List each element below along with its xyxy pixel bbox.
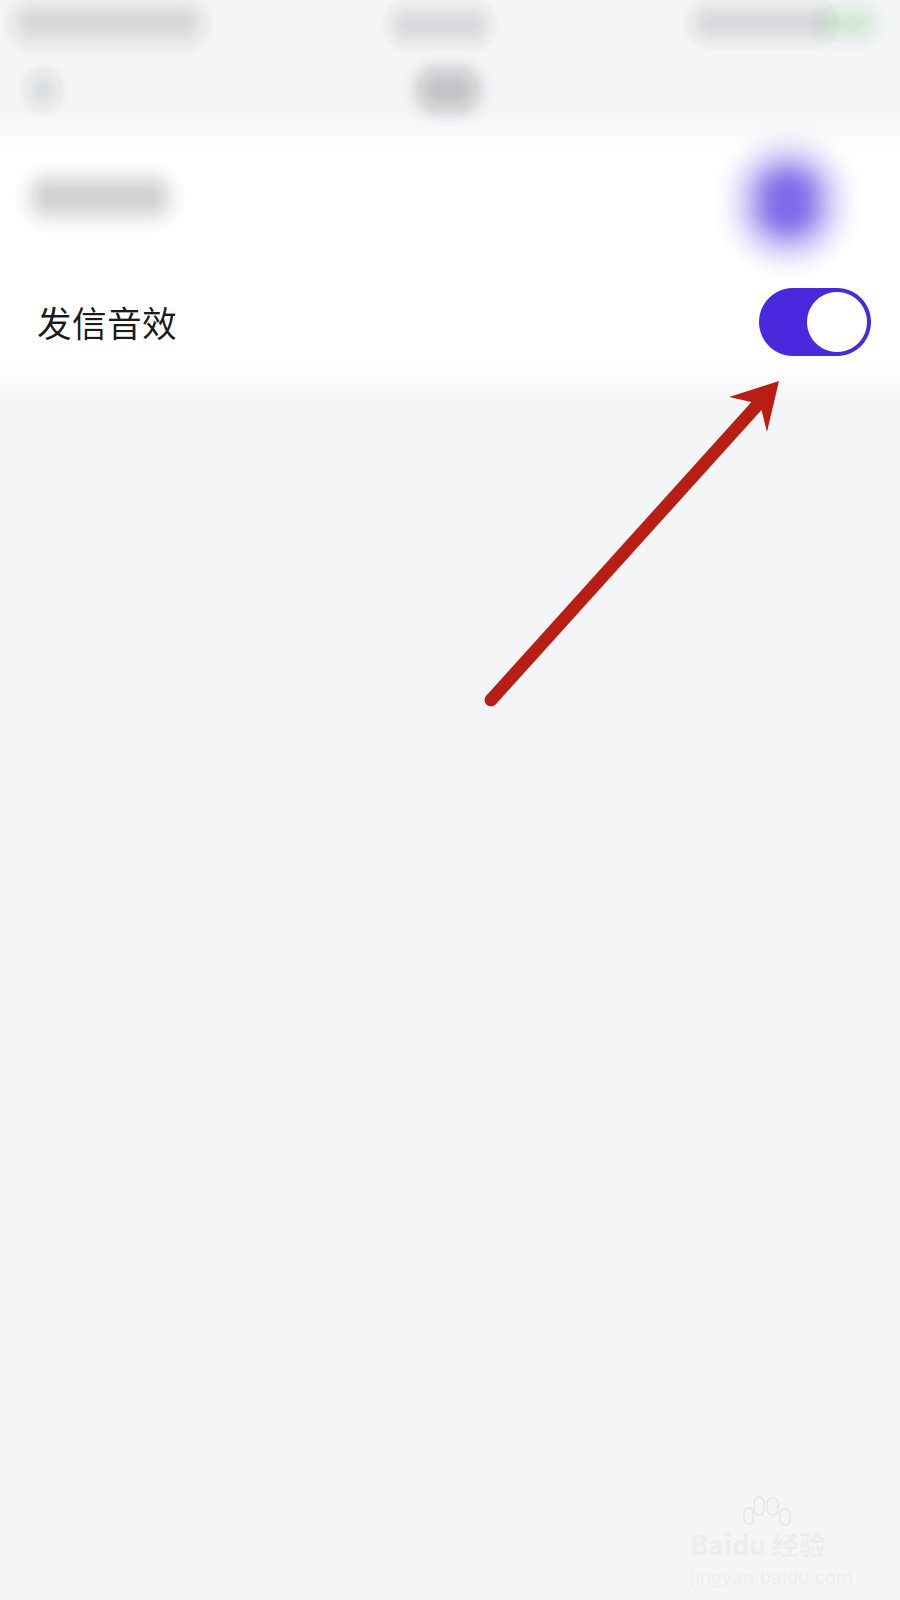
button[interactable]: 发信音效: [0, 264, 900, 380]
staticText: Baidu 经验: [690, 1524, 826, 1563]
staticText: 发信音效: [37, 297, 177, 347]
button[interactable]: 发信音效 switch, on: [759, 288, 871, 356]
